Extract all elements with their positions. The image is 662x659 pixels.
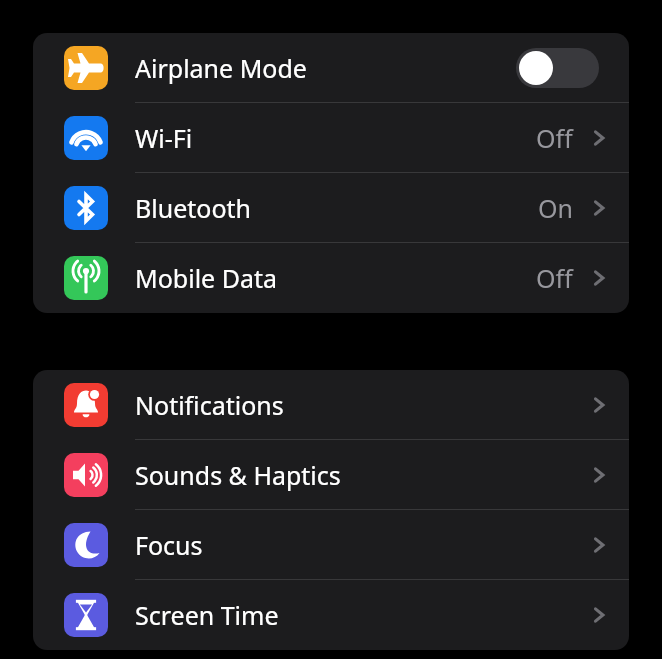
button[interactable]: Screen Time bbox=[33, 580, 629, 650]
staticText: Focus bbox=[135, 528, 203, 562]
staticText: Notifications bbox=[135, 388, 284, 422]
staticText: Mobile Data bbox=[135, 261, 278, 295]
button[interactable]: Sounds & Haptics bbox=[33, 440, 629, 510]
staticText: Airplane Mode bbox=[135, 51, 307, 85]
button[interactable]: Airplane Mode bbox=[33, 33, 629, 103]
staticText: Off bbox=[536, 261, 573, 295]
staticText: On bbox=[538, 191, 573, 225]
button[interactable]: Focus bbox=[33, 510, 629, 580]
button[interactable]: Notifications bbox=[33, 370, 629, 440]
staticText: Wi-Fi bbox=[135, 121, 193, 155]
button[interactable]: Airplane Mode toggle bbox=[516, 48, 599, 88]
staticText: Bluetooth bbox=[135, 191, 252, 225]
button[interactable]: Bluetooth bbox=[33, 173, 629, 243]
button[interactable]: Wi-Fi bbox=[33, 103, 629, 173]
staticText: Off bbox=[536, 121, 573, 155]
staticText: Screen Time bbox=[135, 598, 279, 632]
staticText: Sounds & Haptics bbox=[135, 458, 341, 492]
button[interactable]: Mobile Data bbox=[33, 243, 629, 313]
